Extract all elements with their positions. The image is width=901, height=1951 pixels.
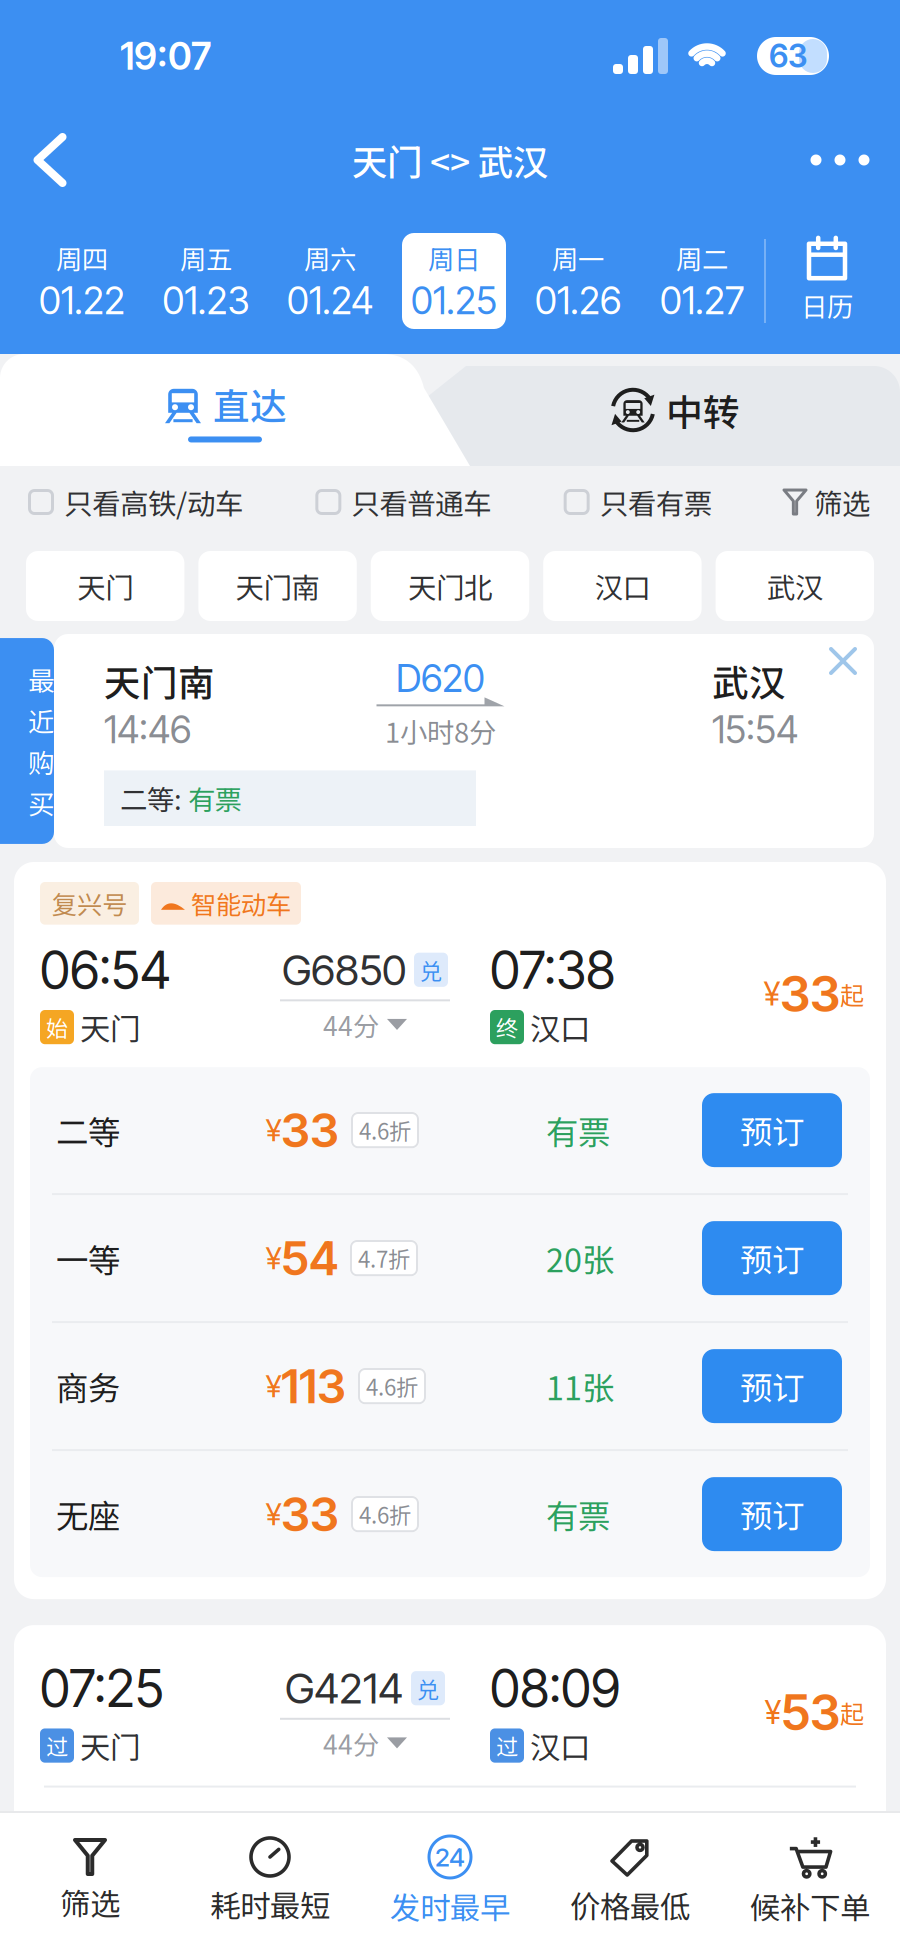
staticText: 兑 <box>417 1672 439 1704</box>
button[interactable]: 周一 <box>516 219 640 343</box>
button[interactable]: 筛选 <box>784 481 870 522</box>
staticText: 01.27 <box>660 278 744 323</box>
staticText: 武汉 <box>767 565 823 606</box>
staticText: 只看高铁/动车 <box>64 481 243 522</box>
button[interactable]: 价格最低 <box>540 1813 720 1951</box>
staticText: 07:38 <box>490 939 615 1001</box>
button[interactable]: 24 <box>360 1813 540 1951</box>
staticText: G4214 <box>285 1663 403 1714</box>
staticText: 33 <box>780 964 840 1024</box>
staticText: ¥ <box>266 1112 281 1148</box>
staticText: 日历 <box>801 286 853 324</box>
button[interactable]: 天门北 <box>371 551 529 621</box>
staticText: 06:54 <box>40 939 171 1001</box>
button[interactable]: 汉口 <box>543 551 702 621</box>
staticText: 11张 <box>546 1363 614 1410</box>
staticText: 发时最早 <box>390 1884 510 1928</box>
staticText: 63 <box>769 37 807 75</box>
button[interactable]: 日历 <box>766 219 888 343</box>
staticText: 耗时最短 <box>210 1882 330 1926</box>
staticText: 汉口 <box>594 565 650 606</box>
staticText: D620 <box>396 656 485 701</box>
button[interactable]: 筛选 <box>0 1813 180 1951</box>
button[interactable]: 最 <box>0 638 54 844</box>
staticText: 商务 <box>466 1818 522 1859</box>
button[interactable]: Close <box>812 634 874 688</box>
staticText: 天门南 <box>236 565 320 606</box>
staticText: 预订 <box>740 1107 804 1154</box>
staticText: 汉口 <box>530 1723 590 1767</box>
staticText: 4.6折 <box>359 1114 411 1146</box>
staticText: 天门 <box>80 1723 140 1767</box>
button[interactable]: 预订 <box>702 1477 842 1551</box>
staticText: 有票 <box>546 1107 610 1154</box>
staticText: 近 <box>28 701 54 739</box>
staticText: 二等: <box>120 778 188 818</box>
button[interactable]: 只看普通车 <box>315 481 491 522</box>
button[interactable]: 天门南 <box>198 551 357 621</box>
staticText: 购 <box>28 742 54 781</box>
staticText: ¥ <box>765 1693 781 1731</box>
staticText: 周四 <box>56 239 108 277</box>
staticText: 筛选 <box>60 1880 120 1924</box>
button[interactable]: 周四 <box>20 219 144 343</box>
button[interactable]: 预订 <box>702 1349 842 1423</box>
staticText: 周五 <box>180 239 232 277</box>
staticText: ¥ <box>266 1496 281 1532</box>
button[interactable]: 候补下单 <box>720 1813 900 1951</box>
staticText: 筛选 <box>814 481 870 522</box>
staticText: 01.22 <box>39 278 125 323</box>
button[interactable]: More <box>780 116 900 204</box>
staticText: 53 <box>781 1682 840 1742</box>
staticText: ¥ <box>764 975 780 1013</box>
button[interactable]: 中转 <box>450 354 900 466</box>
staticText: 无座 <box>56 1491 120 1538</box>
button[interactable]: 只看高铁/动车 <box>28 481 243 522</box>
staticText: 54 <box>281 1230 338 1286</box>
button[interactable]: 预订 <box>702 1093 842 1167</box>
staticText: 候补下单 <box>750 1884 870 1928</box>
button[interactable]: 周日 <box>392 219 516 343</box>
button[interactable]: 只看有票 <box>564 481 712 522</box>
button[interactable]: Back <box>0 116 100 204</box>
staticText: 20张 <box>546 1235 614 1282</box>
staticText: 始 <box>46 1011 68 1043</box>
button[interactable]: 周二 <box>640 219 764 343</box>
staticText: 天门 <> 武汉 <box>352 134 548 186</box>
staticText: ¥ <box>266 1240 281 1276</box>
staticText: 预订 <box>740 1491 804 1538</box>
staticText: 周一 <box>552 239 604 277</box>
staticText: 4.6折 <box>359 1498 411 1530</box>
button[interactable]: 武汉 <box>716 551 874 621</box>
button[interactable]: 天门 <box>26 551 184 621</box>
staticText: 有票 <box>546 1491 610 1538</box>
button[interactable]: 预订 <box>702 1221 842 1295</box>
staticText: 周日 <box>428 239 480 277</box>
staticText: 有票 <box>188 778 242 818</box>
staticText: 4.6折 <box>366 1370 418 1402</box>
staticText: 4.7折 <box>358 1242 410 1274</box>
staticText: 08:09 <box>490 1657 620 1719</box>
staticText: 过 <box>46 1729 68 1762</box>
staticText: 44分 <box>323 1005 379 1043</box>
button[interactable]: 周六 <box>268 219 392 343</box>
staticText: 14:46 <box>104 707 191 752</box>
staticText: 天门 <box>80 1005 140 1049</box>
staticText: 33 <box>281 1486 339 1542</box>
button[interactable]: 周五 <box>144 219 268 343</box>
staticText: 最 <box>28 660 54 698</box>
staticText: 买 <box>28 784 54 822</box>
staticText: 智能动车 <box>191 885 291 922</box>
staticText: 兑 <box>420 954 442 986</box>
staticText: 起 <box>840 1695 864 1730</box>
staticText: 预订 <box>740 1235 804 1282</box>
button[interactable]: 直达 <box>0 354 450 466</box>
staticText: 天门南 <box>104 654 215 707</box>
staticText: 周六 <box>304 239 356 277</box>
button[interactable]: 耗时最短 <box>180 1813 360 1951</box>
staticText: 二等 <box>56 1107 120 1154</box>
staticText: 24 <box>435 1841 465 1873</box>
